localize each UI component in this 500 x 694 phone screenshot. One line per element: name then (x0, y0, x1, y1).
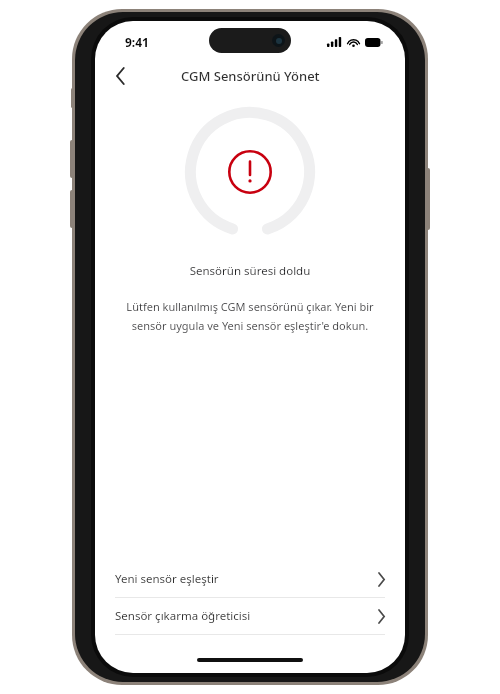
staticText: CGM Sensörünü Yönet (181, 67, 320, 85)
staticText: 9:41 (125, 34, 149, 50)
button[interactable]: Yeni sensör eşleştir (95, 561, 405, 598)
staticText: Sensör çıkarma öğreticisi (115, 608, 251, 624)
button[interactable]: Back (103, 59, 137, 93)
staticText: Lütfen kullanılmış CGM sensörünü çıkar. … (109, 299, 391, 333)
button[interactable]: Sensör çıkarma öğreticisi (95, 598, 405, 635)
staticText: Yeni sensör eşleştir (115, 571, 219, 587)
staticText: Sensörün süresi doldu (95, 263, 405, 279)
